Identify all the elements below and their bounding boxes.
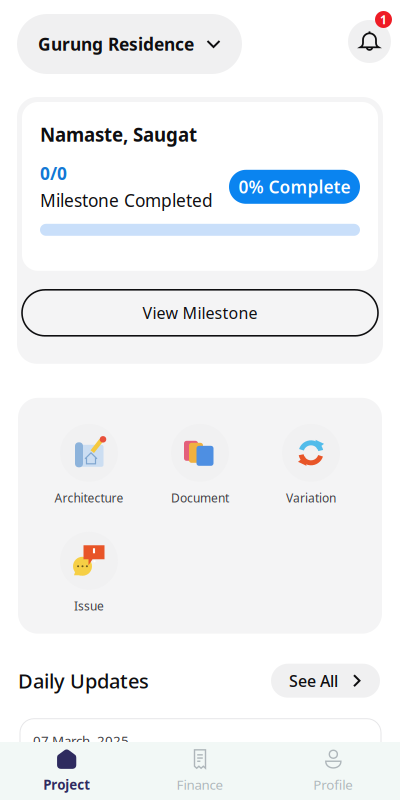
button[interactable]: Gurung Residence [17, 14, 242, 74]
button[interactable]: Profile [267, 742, 400, 800]
staticText: See All [289, 670, 338, 691]
staticText: Document [171, 490, 229, 506]
staticText: View Milestone [142, 302, 257, 323]
staticText: Gurung Residence [38, 32, 194, 55]
staticText: Variation [286, 490, 336, 506]
button[interactable]: Issue [33, 532, 144, 614]
button[interactable]: View Milestone [22, 290, 378, 336]
staticText: 0/0 [40, 162, 67, 185]
button[interactable]: 0% Complete [229, 170, 360, 204]
button[interactable]: Notifications [348, 11, 400, 63]
staticText: 0% Complete [238, 175, 350, 198]
button[interactable]: See All [271, 664, 380, 698]
button[interactable]: Architecture [33, 424, 144, 506]
staticText: 07 March, 2025 [33, 732, 129, 749]
staticText: 1 [380, 11, 387, 27]
staticText: Milestone Completed [40, 189, 213, 212]
staticText: Finance [176, 776, 223, 793]
staticText: Project [43, 776, 90, 793]
staticText: Namaste, Saugat [40, 122, 197, 147]
button[interactable]: Document [144, 424, 255, 506]
button[interactable]: Finance [133, 742, 267, 800]
staticText: Daily Updates [18, 667, 149, 694]
button[interactable]: Project [0, 742, 133, 800]
staticText: Profile [313, 776, 353, 793]
staticText: Issue [74, 598, 104, 614]
button[interactable]: Variation [255, 424, 366, 506]
staticText: Architecture [54, 490, 123, 506]
